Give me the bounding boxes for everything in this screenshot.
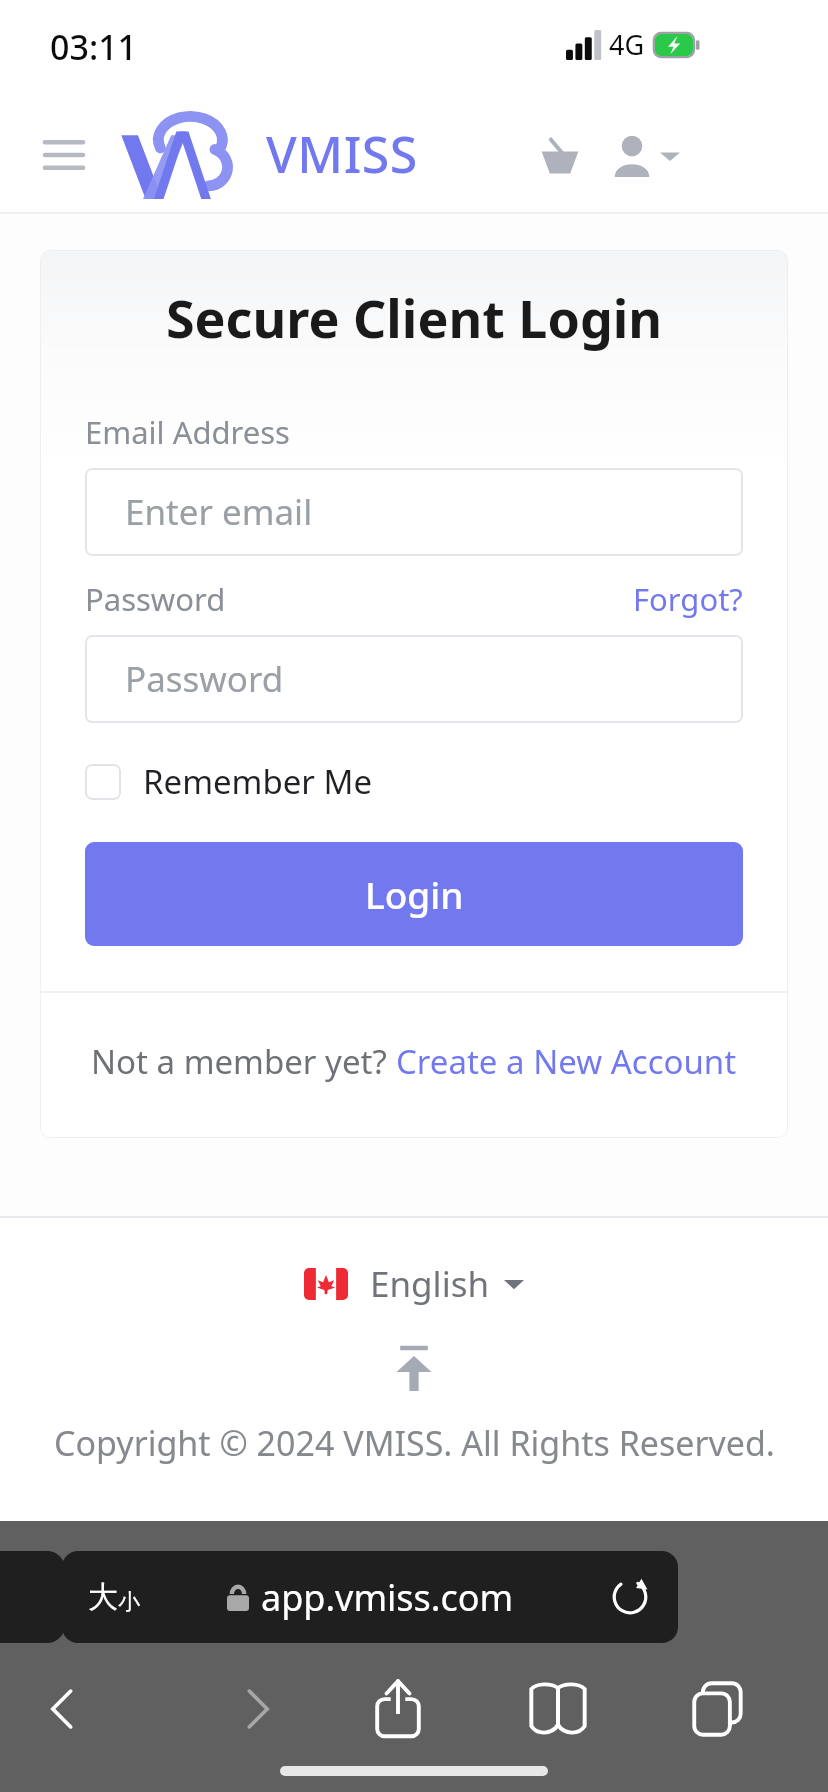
- button[interactable]: Back: [22, 1667, 106, 1751]
- staticText: 大: [88, 1578, 118, 1616]
- button[interactable]: Bookmarks: [516, 1667, 600, 1751]
- staticText: Create a New Account: [396, 1039, 737, 1084]
- button[interactable]: Remember Me: [85, 759, 373, 804]
- button[interactable]: Create a New Account: [396, 1039, 737, 1084]
- staticText: 03:11: [50, 24, 138, 70]
- button[interactable]: English: [304, 1260, 524, 1308]
- button[interactable]: Forward: [214, 1667, 298, 1751]
- button[interactable]: Text size: [88, 1578, 140, 1616]
- button[interactable]: VMISS: [120, 106, 418, 202]
- staticText: Password: [85, 578, 226, 620]
- staticText: Secure Client Login: [40, 282, 788, 353]
- button[interactable]: Enter email: [85, 468, 743, 556]
- button[interactable]: Forgot?: [633, 578, 743, 620]
- button[interactable]: Reload: [602, 1569, 658, 1625]
- staticText: Enter email: [125, 488, 313, 536]
- button[interactable]: Share: [356, 1667, 440, 1751]
- staticText: Login: [365, 869, 464, 919]
- button[interactable]: Previous tab: [0, 1551, 65, 1643]
- staticText: app.vmiss.com: [261, 1573, 514, 1622]
- button[interactable]: Menu: [36, 127, 92, 183]
- staticText: 小: [118, 1588, 140, 1616]
- staticText: Not a member yet?: [91, 1039, 396, 1084]
- staticText: Password: [125, 655, 284, 703]
- staticText: 4G: [609, 26, 645, 63]
- staticText: English: [370, 1260, 490, 1308]
- button[interactable]: Account: [608, 124, 680, 188]
- staticText: Forgot?: [633, 578, 743, 620]
- button[interactable]: Password: [85, 635, 743, 723]
- staticText: VMISS: [266, 120, 418, 188]
- button[interactable]: Text size: [62, 1551, 678, 1643]
- staticText: Copyright © 2024 VMISS. All Rights Reser…: [54, 1420, 775, 1466]
- button[interactable]: Tabs: [676, 1667, 760, 1751]
- staticText: Remember Me: [143, 759, 373, 804]
- button[interactable]: Back to top: [379, 1340, 449, 1398]
- button[interactable]: Cart: [528, 124, 592, 188]
- staticText: Email Address: [85, 411, 290, 453]
- button[interactable]: Login: [85, 842, 743, 946]
